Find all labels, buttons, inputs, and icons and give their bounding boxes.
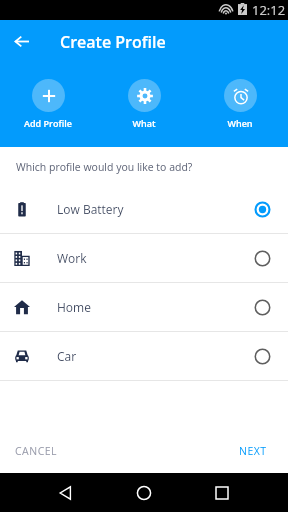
button[interactable]: Back [0,20,44,62]
staticText: 12:12 [252,1,286,19]
staticText: Add Profile [24,117,72,129]
button[interactable]: When [192,79,288,129]
button[interactable]: Work [0,234,288,282]
staticText: Create Profile [60,31,166,53]
staticText: CANCEL [15,444,58,458]
button[interactable]: Low Battery [0,185,288,233]
button[interactable]: Back [37,473,93,512]
button[interactable]: NEXT [231,436,275,466]
button[interactable]: Recents [194,473,250,512]
staticText: Work [57,250,87,266]
staticText: Home [57,299,91,315]
button[interactable]: Add Profile [0,79,96,129]
staticText: Which profile would you like to add? [16,160,193,174]
staticText: Low Battery [57,201,124,217]
staticText: Car [57,348,77,364]
button[interactable]: What [96,79,192,129]
staticText: When [227,117,253,129]
button[interactable]: Home [0,283,288,331]
staticText: What [132,117,156,129]
button[interactable]: CANCEL [7,436,66,466]
button[interactable]: Car [0,332,288,380]
button[interactable]: Home [116,473,172,512]
staticText: NEXT [239,444,267,458]
